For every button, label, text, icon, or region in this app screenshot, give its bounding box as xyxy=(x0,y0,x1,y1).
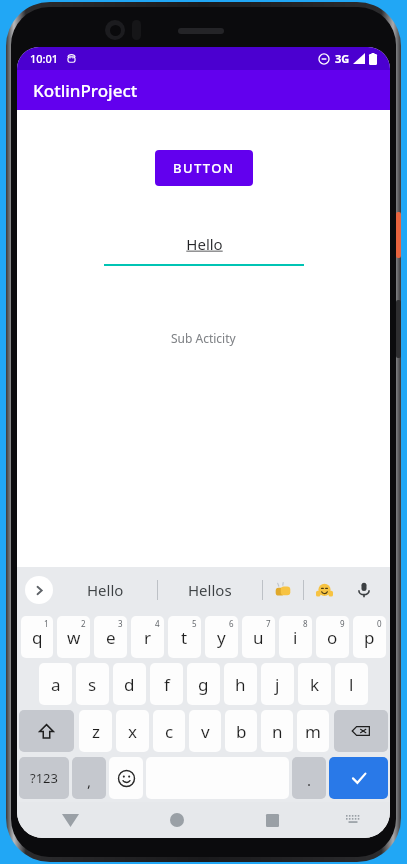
button[interactable]: y xyxy=(205,616,238,658)
staticText: s xyxy=(88,673,97,696)
staticText: o xyxy=(327,626,338,649)
staticText: q xyxy=(32,626,43,649)
button[interactable]: Hello xyxy=(104,234,304,266)
staticText: k xyxy=(310,673,320,696)
staticText: u xyxy=(253,626,264,649)
button[interactable]: Hello xyxy=(53,567,157,613)
button[interactable]: e xyxy=(94,616,127,658)
staticText: g xyxy=(198,673,209,696)
staticText: x xyxy=(128,720,137,743)
staticText: 4 xyxy=(155,618,160,629)
button[interactable]: Hugging face emoji xyxy=(304,567,344,613)
button[interactable]: s xyxy=(76,663,109,705)
button[interactable]: Backspace xyxy=(334,710,388,752)
staticText: Hello xyxy=(87,580,124,600)
button[interactable]: Enter xyxy=(329,757,388,799)
button[interactable]: i xyxy=(279,616,312,658)
staticText: d xyxy=(124,673,135,696)
staticText: 0 xyxy=(377,618,382,629)
button[interactable]: Hellos xyxy=(158,567,262,613)
button[interactable]: w xyxy=(57,616,90,658)
staticText: . xyxy=(307,770,312,790)
button[interactable]: l xyxy=(335,663,368,705)
button[interactable]: u xyxy=(242,616,275,658)
staticText: b xyxy=(236,720,247,743)
button[interactable]: Recent apps xyxy=(230,802,315,838)
button[interactable]: a xyxy=(39,663,72,705)
button[interactable]: . xyxy=(292,757,326,799)
button[interactable]: f xyxy=(150,663,183,705)
button[interactable]: Clapping hands emoji xyxy=(263,567,303,613)
staticText: h xyxy=(235,673,246,696)
staticText: 5 xyxy=(192,618,197,629)
button[interactable]: x xyxy=(116,710,149,752)
staticText: c xyxy=(165,720,174,743)
button[interactable]: r xyxy=(131,616,164,658)
button[interactable]: v xyxy=(189,710,221,752)
staticText: p xyxy=(364,626,375,649)
staticText: 3G xyxy=(335,51,350,66)
button[interactable]: ?123 xyxy=(19,757,69,799)
button[interactable]: t xyxy=(168,616,201,658)
button[interactable]: d xyxy=(113,663,146,705)
staticText: z xyxy=(92,720,100,743)
button[interactable]: c xyxy=(153,710,185,752)
button[interactable]: p xyxy=(353,616,386,658)
staticText: j xyxy=(275,673,280,696)
button[interactable]: z xyxy=(79,710,112,752)
button[interactable]: Voice input xyxy=(344,567,384,613)
button[interactable]: Keyboard switcher xyxy=(315,802,390,838)
button[interactable]: g xyxy=(187,663,220,705)
staticText: w xyxy=(67,626,81,649)
staticText: m xyxy=(305,720,321,743)
staticText: Sub Acticity xyxy=(171,330,236,346)
staticText: 2 xyxy=(81,618,86,629)
button[interactable]: b xyxy=(225,710,257,752)
button[interactable]: BUTTON xyxy=(155,150,253,186)
button[interactable]: n xyxy=(261,710,293,752)
staticText: y xyxy=(217,626,226,649)
staticText: 8 xyxy=(303,618,308,629)
staticText: KotlinProject xyxy=(33,79,138,102)
button[interactable]: Home xyxy=(123,802,230,838)
staticText: l xyxy=(349,673,354,696)
staticText: r xyxy=(144,626,152,649)
staticText: , xyxy=(87,771,92,791)
staticText: 3 xyxy=(118,618,123,629)
staticText: 9 xyxy=(340,618,345,629)
staticText: Hello xyxy=(186,234,223,254)
button[interactable]: Shift xyxy=(19,710,74,752)
staticText: e xyxy=(106,626,116,649)
staticText: 6 xyxy=(229,618,234,629)
staticText: 10:01 xyxy=(30,51,59,66)
staticText: a xyxy=(51,673,61,696)
button[interactable]: More suggestions xyxy=(25,576,53,604)
button[interactable]: o xyxy=(316,616,349,658)
staticText: f xyxy=(164,673,170,696)
staticText: i xyxy=(293,626,298,649)
staticText: BUTTON xyxy=(173,159,235,177)
button[interactable]: Sub Acticity xyxy=(167,326,240,350)
staticText: ?123 xyxy=(30,769,58,787)
staticText: 7 xyxy=(266,618,271,629)
button[interactable]: h xyxy=(224,663,257,705)
staticText: Hellos xyxy=(188,580,232,600)
staticText: t xyxy=(181,626,188,649)
button[interactable]: Back xyxy=(17,802,123,838)
button[interactable]: m xyxy=(297,710,329,752)
button[interactable]: Emoji xyxy=(109,757,143,799)
button[interactable]: q xyxy=(21,616,53,658)
button[interactable]: , xyxy=(72,757,106,799)
staticText: 1 xyxy=(44,618,49,629)
button[interactable]: k xyxy=(298,663,331,705)
button[interactable]: j xyxy=(261,663,294,705)
staticText: v xyxy=(201,720,210,743)
staticText: n xyxy=(272,720,283,743)
